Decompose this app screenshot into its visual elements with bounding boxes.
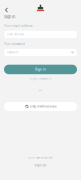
staticText: Sign up	[34, 164, 46, 167]
staticText: Your email address	[4, 24, 32, 28]
button[interactable]: Sing in with Google	[4, 102, 77, 111]
button[interactable]: Back	[3, 5, 10, 14]
staticText: Sign in	[35, 68, 46, 71]
button[interactable]: Forgot password	[4, 76, 77, 81]
button[interactable]: Sign up	[4, 163, 77, 167]
staticText: Don't have an account?	[28, 156, 53, 159]
button[interactable]: Sign in	[4, 65, 77, 74]
staticText: Your password	[4, 42, 25, 46]
staticText: Sing in with Google	[30, 105, 56, 108]
staticText: Sign in	[4, 15, 15, 19]
staticText: or	[39, 89, 42, 92]
staticText: Email address	[7, 33, 24, 36]
staticText: Password	[7, 51, 19, 54]
staticText: Forgot password	[29, 77, 51, 80]
